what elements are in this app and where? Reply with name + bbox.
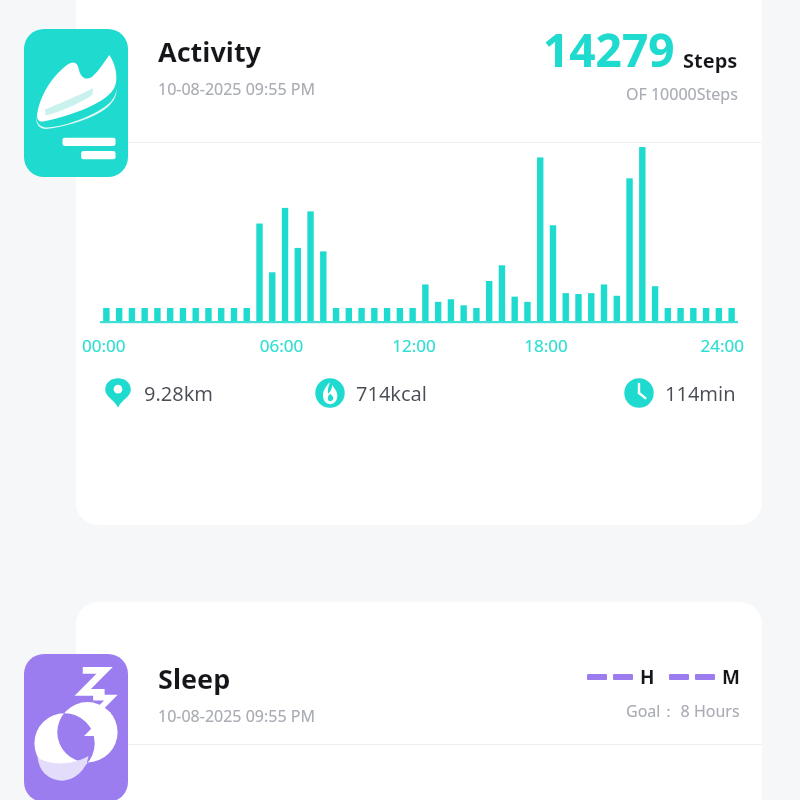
staticText: 24:00: [612, 334, 744, 357]
staticText: 18:00: [480, 334, 612, 357]
staticText: 9.28km: [144, 380, 214, 407]
staticText: 06:00: [215, 334, 348, 357]
button[interactable]: 114min: [525, 377, 736, 409]
staticText: H: [640, 664, 655, 690]
staticText: Activity: [158, 33, 262, 70]
button[interactable]: 714kcal: [314, 377, 525, 409]
button[interactable]: Activity: [76, 0, 762, 525]
staticText: 00:00: [82, 334, 215, 357]
button[interactable]: Sleep: [24, 654, 128, 800]
staticText: 714kcal: [356, 380, 427, 407]
button[interactable]: Activity: [24, 29, 128, 177]
staticText: 114min: [665, 380, 736, 407]
staticText: 10-08-2025 09:55 PM: [158, 705, 315, 727]
staticText: 12:00: [348, 334, 480, 357]
staticText: 14279: [543, 18, 675, 81]
staticText: Sleep: [158, 660, 231, 697]
button[interactable]: 9.28km: [102, 377, 314, 409]
button[interactable]: Sleep: [76, 602, 762, 800]
staticText: OF 10000Steps: [626, 83, 738, 105]
staticText: Goal： 8 Hours: [626, 700, 740, 722]
staticText: M: [722, 664, 740, 690]
staticText: Steps: [683, 47, 738, 74]
staticText: 10-08-2025 09:55 PM: [158, 78, 315, 100]
